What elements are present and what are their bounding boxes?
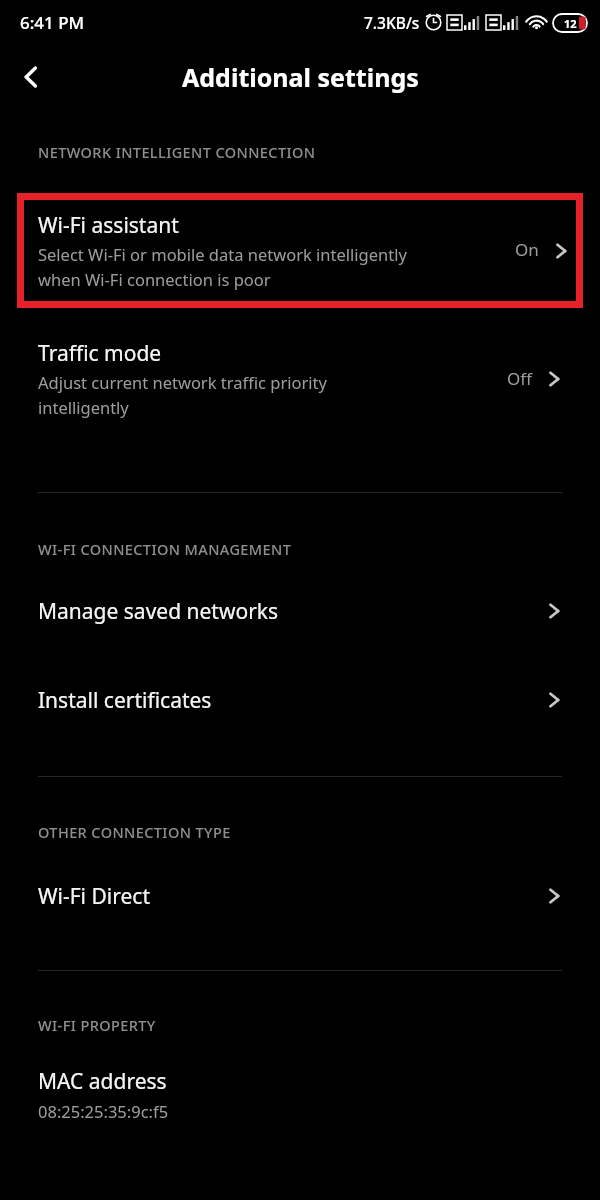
staticText: Wi-Fi assistant (38, 211, 179, 240)
button[interactable]: MAC address (0, 1061, 600, 1128)
staticText: Off (507, 367, 532, 390)
staticText: Install certificates (38, 686, 546, 715)
button[interactable]: Back (0, 46, 62, 108)
staticText: Manage saved networks (38, 597, 546, 626)
staticText: Select Wi-Fi or mobile data network inte… (38, 243, 407, 291)
staticText: 6:41 PM (20, 11, 85, 34)
staticText: Additional settings (182, 60, 419, 94)
button[interactable]: Wi-Fi assistant (17, 193, 583, 308)
staticText: OTHER CONNECTION TYPE (38, 822, 231, 842)
staticText: On (515, 238, 539, 261)
button[interactable]: Wi-Fi Direct (0, 860, 600, 932)
staticText: Traffic mode (38, 339, 162, 368)
staticText: NETWORK INTELLIGENT CONNECTION (38, 142, 316, 162)
staticText: 12 (564, 16, 577, 31)
staticText: Adjust current network traffic priority … (38, 371, 327, 419)
staticText: Wi-Fi Direct (38, 882, 546, 911)
staticText: MAC address (38, 1067, 167, 1096)
button[interactable]: Install certificates (0, 664, 600, 736)
staticText: WI-FI CONNECTION MANAGEMENT (38, 539, 292, 559)
staticText: 7.3KB/s (364, 12, 420, 33)
button[interactable]: Traffic mode (0, 325, 600, 433)
button[interactable]: Manage saved networks (0, 575, 600, 647)
staticText: WI-FI PROPERTY (38, 1015, 156, 1035)
staticText: 08:25:25:35:9c:f5 (38, 1100, 169, 1122)
